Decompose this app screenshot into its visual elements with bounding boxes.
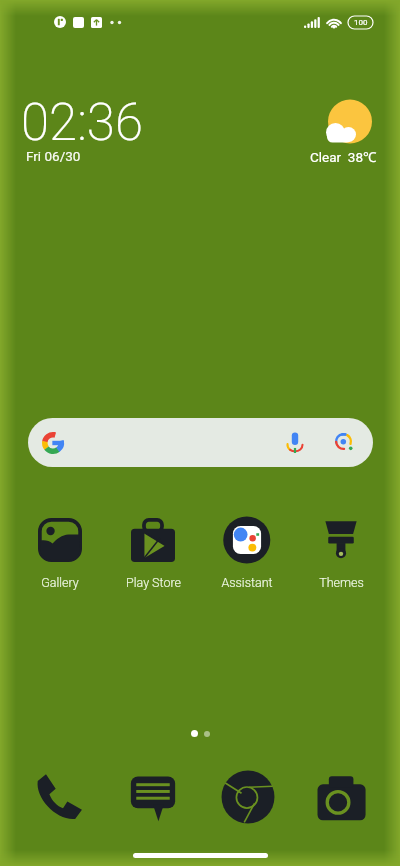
button[interactable]: Chrome	[215, 767, 281, 827]
staticText: 100	[354, 18, 368, 27]
staticText: Themes	[319, 575, 364, 590]
staticText: Assistant	[221, 575, 273, 590]
button[interactable]: Search	[28, 418, 373, 467]
button[interactable]: Themes	[300, 518, 382, 590]
button[interactable]: Messages	[120, 767, 186, 827]
staticText: 02:36	[21, 93, 143, 153]
staticText: Clear 38℃	[310, 148, 377, 166]
staticText: Play Store	[126, 575, 181, 590]
button[interactable]: Assistant	[206, 518, 288, 590]
staticText: Gallery	[41, 575, 79, 590]
button[interactable]: Play Store	[112, 518, 194, 590]
staticText: Fri 06/30	[26, 148, 81, 164]
button[interactable]: Camera	[308, 767, 374, 827]
button[interactable]: Phone	[26, 767, 92, 827]
button[interactable]: Gallery	[19, 518, 101, 590]
